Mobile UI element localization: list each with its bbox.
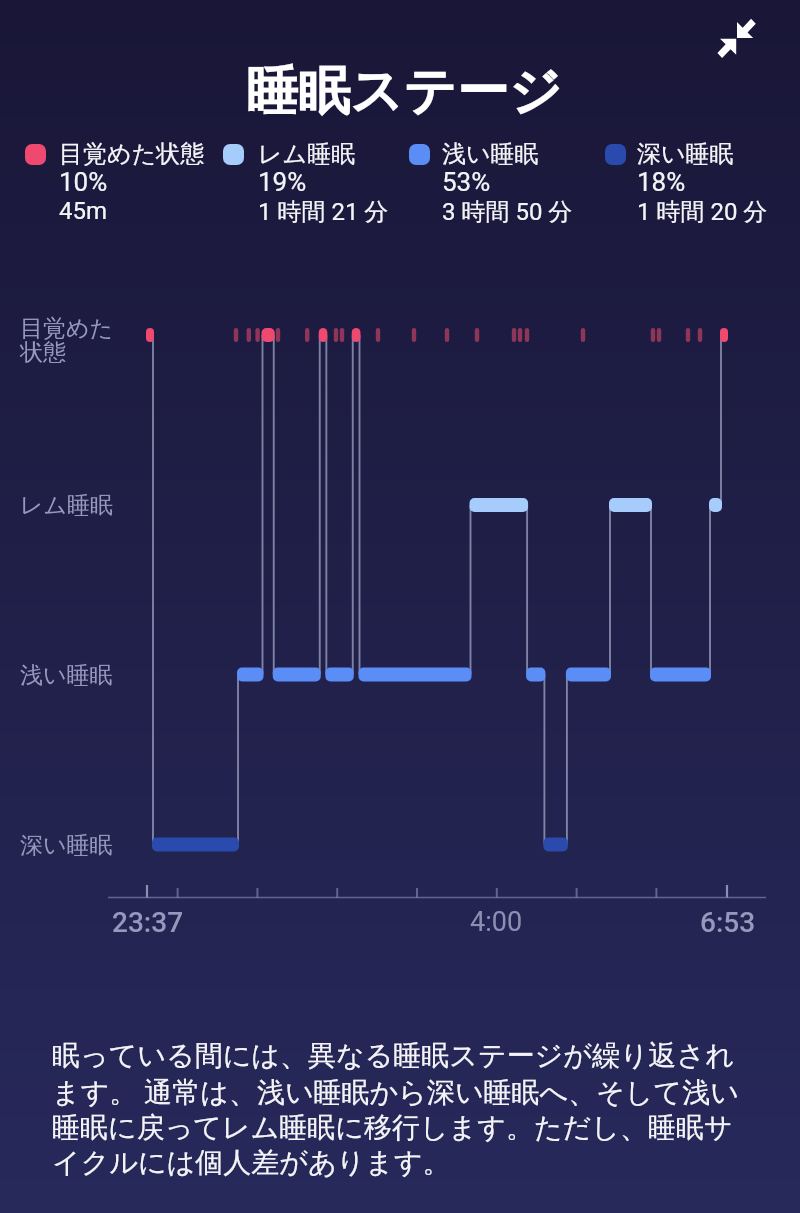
staticText: 深い睡眠 xyxy=(20,831,113,860)
staticText: 浅い睡眠 xyxy=(20,661,113,690)
staticText: 19% xyxy=(258,167,307,197)
staticText: 1 時間 20 分 xyxy=(637,197,768,227)
staticText: 浅い睡眠 xyxy=(442,139,539,169)
staticText: 目覚めた 状態 xyxy=(20,314,114,366)
staticText: 1 時間 21 分 xyxy=(258,197,389,227)
staticText: 18% xyxy=(637,167,686,197)
staticText: 23:37 xyxy=(112,906,184,939)
staticText: 53% xyxy=(442,167,491,197)
button[interactable]: Collapse xyxy=(704,6,770,72)
staticText: 10% xyxy=(59,167,108,197)
staticText: 6:53 xyxy=(700,906,756,939)
staticText: レム睡眠 xyxy=(258,139,356,169)
staticText: 45m xyxy=(59,197,108,225)
staticText: 4:00 xyxy=(470,906,523,938)
button[interactable] xyxy=(17,134,207,232)
button[interactable] xyxy=(215,134,405,232)
staticText: 深い睡眠 xyxy=(637,139,734,169)
staticText: 3 時間 50 分 xyxy=(442,197,573,227)
staticText: レム睡眠 xyxy=(20,491,114,520)
staticText: 睡眠ステージ xyxy=(246,59,562,125)
button[interactable] xyxy=(401,134,591,232)
button[interactable] xyxy=(597,134,787,232)
staticText: 眠っている間には、異なる睡眠ステージが繰り返されます。 通常は、浅い睡眠から深い… xyxy=(52,1038,744,1181)
staticText: 目覚めた状態 xyxy=(59,139,205,169)
